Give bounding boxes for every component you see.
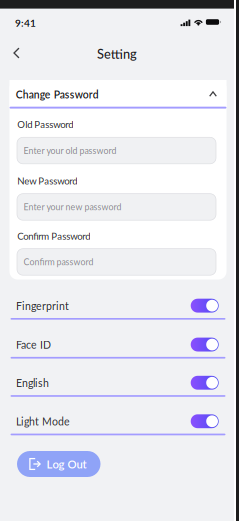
staticText: Face ID	[16, 338, 51, 351]
button[interactable]: Face ID	[9, 331, 226, 358]
button[interactable]: Back	[6, 42, 26, 64]
staticText: Setting	[97, 46, 137, 62]
staticText: Enter your new password	[23, 202, 121, 212]
staticText: Confirm Password	[17, 230, 90, 242]
button[interactable]: Light Mode	[9, 408, 226, 434]
staticText: 9:41	[15, 17, 36, 29]
staticText: English	[16, 377, 49, 389]
staticText: Change Password	[16, 88, 99, 101]
staticText: Confirm password	[23, 257, 93, 267]
button[interactable]: English	[9, 369, 226, 396]
staticText: Fingerprint	[16, 299, 69, 312]
button[interactable]: Log Out	[17, 451, 100, 477]
staticText: New Password	[17, 175, 77, 186]
staticText: Log Out	[46, 457, 86, 471]
button[interactable]: Fingerprint	[9, 292, 226, 319]
staticText: Light Mode	[16, 415, 70, 428]
staticText: Enter your old password	[23, 145, 116, 156]
staticText: Old Password	[17, 118, 73, 130]
button[interactable]: Change Password	[9, 80, 226, 109]
